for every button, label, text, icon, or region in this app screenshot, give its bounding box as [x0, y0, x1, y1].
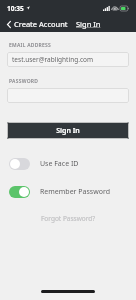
button[interactable]: Remember Password: [7, 184, 129, 200]
staticText: Sign In: [56, 126, 80, 136]
button[interactable]: Back: [5, 17, 70, 31]
staticText: Forgot Password?: [41, 214, 96, 223]
button[interactable]: [7, 88, 129, 103]
staticText: PASSWORD: [9, 78, 39, 85]
other: Back: [7, 21, 11, 28]
button[interactable]: Use Face ID: [7, 156, 129, 172]
button[interactable]: test.user@rablighting.com: [7, 52, 129, 67]
staticText: Remember Password: [40, 187, 110, 197]
staticText: EMAIL ADDRESS: [9, 42, 52, 49]
button[interactable]: Sign In: [7, 122, 129, 139]
staticText: 10:35: [7, 4, 24, 13]
staticText: Sign In: [76, 19, 101, 29]
staticText: Use Face ID: [40, 159, 79, 169]
staticText: Create Account: [14, 19, 68, 29]
button[interactable]: Sign In: [75, 17, 102, 31]
staticText: test.user@rablighting.com: [12, 55, 94, 64]
button[interactable]: Forgot Password?: [7, 214, 129, 223]
